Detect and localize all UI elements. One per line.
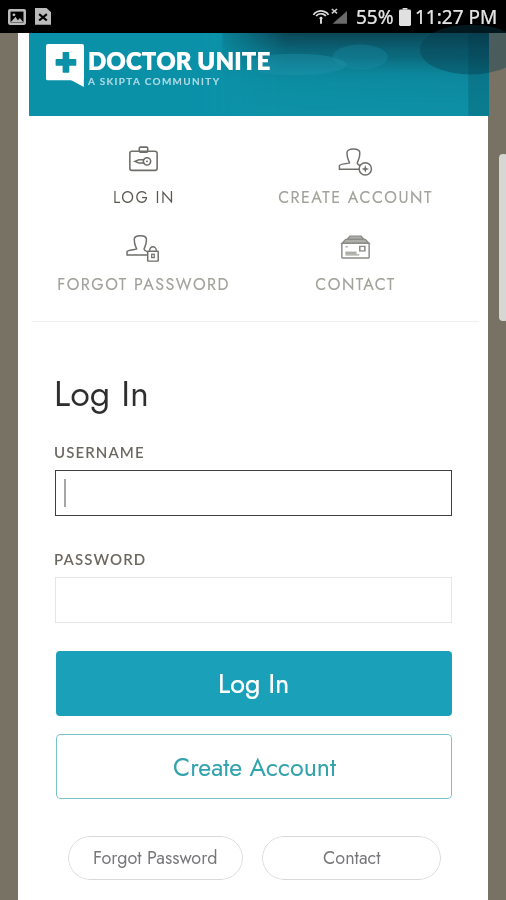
button[interactable]: Contact — [262, 836, 441, 880]
staticText: 55% — [356, 4, 394, 30]
button[interactable] — [55, 470, 452, 516]
button[interactable]: Log In — [56, 651, 452, 716]
button[interactable]: Forgot Password — [68, 836, 243, 880]
button[interactable]: Create Account — [56, 734, 452, 799]
staticText: DOCTOR UNITE — [88, 46, 271, 75]
staticText: A SKIPTA COMMUNITY — [88, 75, 221, 87]
button[interactable]: FORGOT PASSWORD — [26, 233, 261, 296]
staticText: CONTACT — [315, 273, 396, 296]
staticText: CREATE ACCOUNT — [278, 186, 433, 209]
staticText: USERNAME — [54, 443, 145, 461]
staticText: Log In — [54, 367, 149, 419]
button[interactable]: CREATE ACCOUNT — [238, 146, 473, 209]
button[interactable]: LOG IN — [26, 146, 261, 209]
button[interactable]: CONTACT — [238, 233, 473, 296]
staticText: Log In — [218, 664, 290, 703]
staticText: Create Account — [173, 749, 336, 785]
staticText: Forgot Password — [93, 845, 218, 871]
staticText: LOG IN — [113, 186, 175, 209]
staticText: Contact — [323, 845, 381, 871]
staticText: FORGOT PASSWORD — [57, 273, 230, 296]
staticText: PASSWORD — [54, 550, 147, 568]
button[interactable] — [55, 577, 452, 623]
staticText: 11:27 PM — [415, 4, 498, 30]
